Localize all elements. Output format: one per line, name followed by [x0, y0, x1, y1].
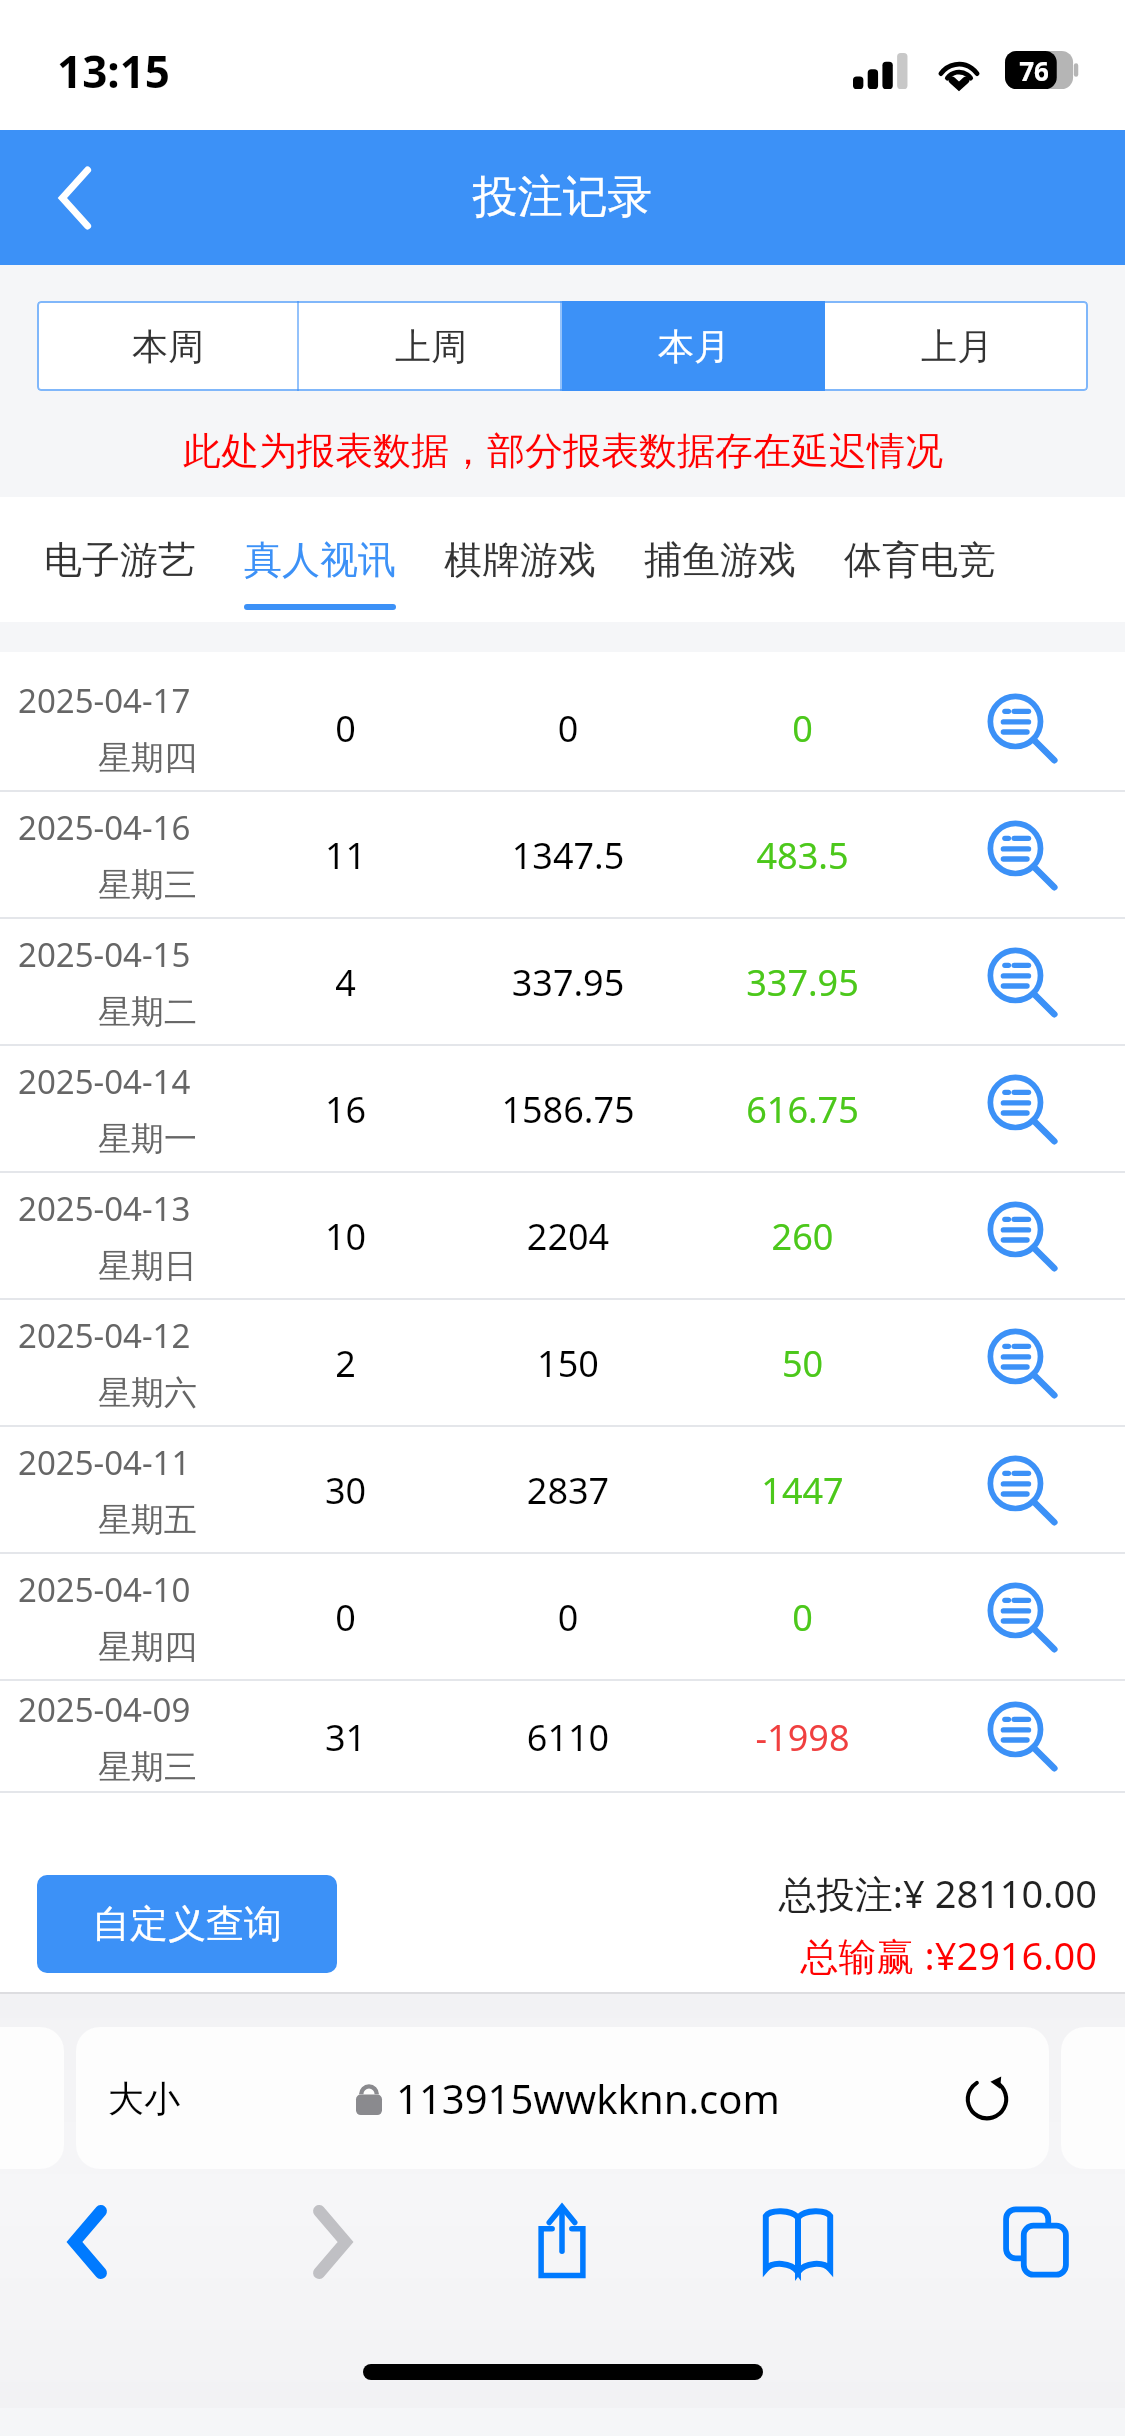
button[interactable]: Back	[33, 2187, 143, 2297]
button[interactable]: 大小	[76, 2027, 1049, 2169]
staticText: 2025-04-16	[18, 805, 191, 850]
staticText: 星期日	[98, 1245, 197, 1287]
staticText: 总投注:¥ 28110.00	[778, 1867, 1097, 1919]
staticText: 2025-04-14	[18, 1059, 191, 1104]
staticText: 星期二	[98, 991, 197, 1033]
staticText: 时间	[0, 667, 246, 712]
staticText: 注单	[914, 667, 1125, 712]
staticText: 2837	[445, 1466, 691, 1515]
staticText: 113915wwkknn.com	[396, 2071, 780, 2125]
button[interactable]: View bet details	[972, 1316, 1068, 1412]
staticText: 50	[691, 1339, 914, 1388]
staticText: 捕鱼游戏	[644, 536, 796, 584]
button[interactable]: View bet details	[972, 1062, 1068, 1158]
staticText: 13:15	[57, 41, 171, 101]
button[interactable]: 电子游艺	[20, 497, 220, 622]
staticText: 616.75	[691, 1085, 914, 1134]
staticText: 337.95	[691, 958, 914, 1007]
staticText: 上月	[921, 324, 993, 369]
staticText: 2025-04-10	[18, 1567, 191, 1612]
staticText: 31	[246, 1713, 445, 1762]
staticText: 体育电竞	[844, 536, 996, 584]
button[interactable]: 体育电竞	[820, 497, 1020, 622]
staticText: 30	[246, 1466, 445, 1515]
staticText: 1447	[691, 1466, 914, 1515]
staticText: 星期四	[98, 737, 197, 779]
button[interactable]: View bet details	[972, 808, 1068, 904]
staticText: 76	[1009, 53, 1059, 88]
staticText: 1586.75	[445, 1085, 691, 1134]
staticText: 本周	[132, 324, 204, 369]
staticText: 150	[445, 1339, 691, 1388]
staticText: 此处为报表数据，部分报表数据存在延迟情况	[183, 427, 943, 475]
staticText: 0	[445, 1593, 691, 1642]
staticText: 0	[246, 1593, 445, 1642]
button[interactable]: View bet details	[972, 1570, 1068, 1666]
button[interactable]: Reload	[955, 2066, 1019, 2130]
button[interactable]: Tabs	[981, 2187, 1091, 2297]
button[interactable]: View bet details	[972, 1189, 1068, 1285]
staticText: 本月	[658, 324, 730, 369]
button[interactable]: Forward	[277, 2187, 387, 2297]
staticText: 0	[691, 1593, 914, 1642]
staticText: 260	[691, 1212, 914, 1261]
staticText: 10	[246, 1212, 445, 1261]
staticText: 16	[246, 1085, 445, 1134]
staticText: 0	[691, 704, 914, 753]
staticText: 0	[246, 704, 445, 753]
staticText: 4	[246, 958, 445, 1007]
staticText: 星期四	[98, 1626, 197, 1668]
button[interactable]: View bet details	[972, 681, 1068, 777]
staticText: 星期三	[98, 864, 197, 906]
staticText: -1998	[691, 1713, 914, 1762]
staticText: 337.95	[445, 958, 691, 1007]
staticText: 电子游艺	[44, 536, 196, 584]
button[interactable]: 真人视讯	[220, 497, 420, 622]
staticText: 真人视讯	[244, 536, 396, 584]
staticText: 2	[246, 1339, 445, 1388]
staticText: 星期五	[98, 1499, 197, 1541]
button[interactable]: 本月	[562, 301, 825, 391]
staticText: 自定义查询	[92, 1900, 282, 1948]
button[interactable]: 捕鱼游戏	[620, 497, 820, 622]
button[interactable]: View bet details	[972, 935, 1068, 1031]
staticText: 2204	[445, 1212, 691, 1261]
staticText: 2025-04-17	[18, 678, 191, 723]
staticText: 6110	[445, 1713, 691, 1762]
staticText: 2025-04-13	[18, 1186, 191, 1231]
staticText: 投注记录	[0, 169, 1125, 226]
staticText: 11	[246, 831, 445, 880]
button[interactable]: Share	[507, 2187, 617, 2297]
staticText: 483.5	[691, 831, 914, 880]
staticText: 1347.5	[445, 831, 691, 880]
button[interactable]: Back	[30, 153, 120, 243]
staticText: 2025-04-11	[18, 1440, 191, 1485]
staticText: 总输赢 :¥2916.00	[800, 1929, 1097, 1981]
staticText: 星期三	[98, 1746, 197, 1788]
staticText: 2025-04-15	[18, 932, 191, 977]
button[interactable]: View bet details	[972, 1689, 1068, 1785]
staticText: 星期一	[98, 1118, 197, 1160]
button[interactable]: 上周	[299, 301, 562, 391]
staticText: 棋牌游戏	[444, 536, 596, 584]
button[interactable]: Bookmarks	[743, 2187, 853, 2297]
staticText: 大小	[108, 2076, 180, 2121]
staticText: 2025-04-12	[18, 1313, 191, 1358]
button[interactable]: 上月	[825, 301, 1088, 391]
staticText: 星期六	[98, 1372, 197, 1414]
staticText: 上周	[395, 324, 467, 369]
button[interactable]: 自定义查询	[37, 1875, 337, 1973]
button[interactable]: View bet details	[972, 1443, 1068, 1539]
button[interactable]: 本周	[37, 301, 299, 391]
button[interactable]: 棋牌游戏	[420, 497, 620, 622]
staticText: 2025-04-09	[18, 1687, 191, 1732]
staticText: 0	[445, 704, 691, 753]
